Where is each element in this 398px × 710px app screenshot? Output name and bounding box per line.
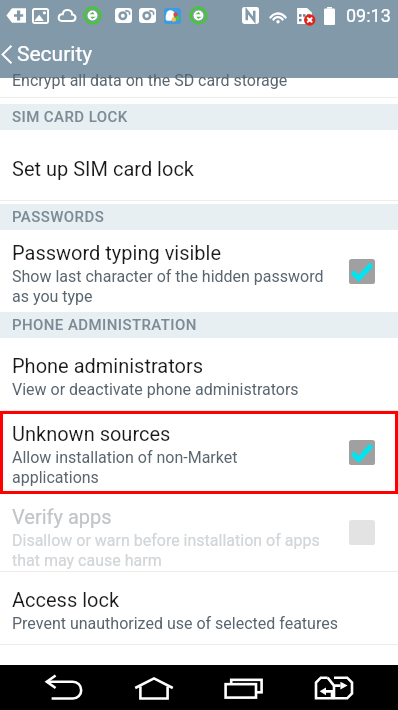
button[interactable]: Back bbox=[0, 31, 398, 78]
staticText: View or deactivate phone administrators bbox=[12, 380, 299, 399]
staticText: 09:13 bbox=[346, 5, 391, 26]
staticText: Encrypt all data on the SD card storage bbox=[12, 71, 288, 90]
staticText: Set up SIM card lock bbox=[12, 157, 194, 180]
staticText: Prevent unauthorized use of selected fea… bbox=[12, 614, 338, 633]
staticText: Unknown sources bbox=[12, 422, 171, 445]
staticText: Phone administrators bbox=[12, 354, 204, 377]
other: Back bbox=[0, 44, 14, 65]
button[interactable]: Home bbox=[114, 665, 194, 710]
staticText: Security bbox=[17, 42, 93, 67]
button[interactable]: Password typing visible bbox=[0, 230, 398, 312]
staticText: PHONE ADMINISTRATION bbox=[12, 316, 197, 334]
button[interactable]: Back bbox=[24, 665, 104, 710]
button[interactable]: Phone administrators bbox=[0, 338, 398, 411]
staticText: Show last character of the hidden passwo… bbox=[12, 267, 324, 306]
button[interactable]: Unknown sources bbox=[0, 411, 398, 494]
staticText: SIM CARD LOCK bbox=[12, 108, 128, 126]
staticText: PASSWORDS bbox=[12, 208, 105, 226]
button[interactable]: Set up SIM card lock bbox=[0, 130, 398, 201]
staticText: Disallow or warn before installation of … bbox=[12, 531, 320, 570]
staticText: Verify apps bbox=[12, 505, 112, 528]
button[interactable]: Recent apps bbox=[204, 665, 284, 710]
staticText: Password typing visible bbox=[12, 241, 222, 264]
staticText: Allow installation of non-Market applica… bbox=[12, 448, 238, 487]
staticText: Access lock bbox=[12, 588, 120, 611]
button[interactable]: Access lock bbox=[0, 572, 398, 645]
button[interactable]: Verify apps bbox=[0, 494, 398, 572]
button[interactable]: Multi window bbox=[294, 665, 374, 710]
